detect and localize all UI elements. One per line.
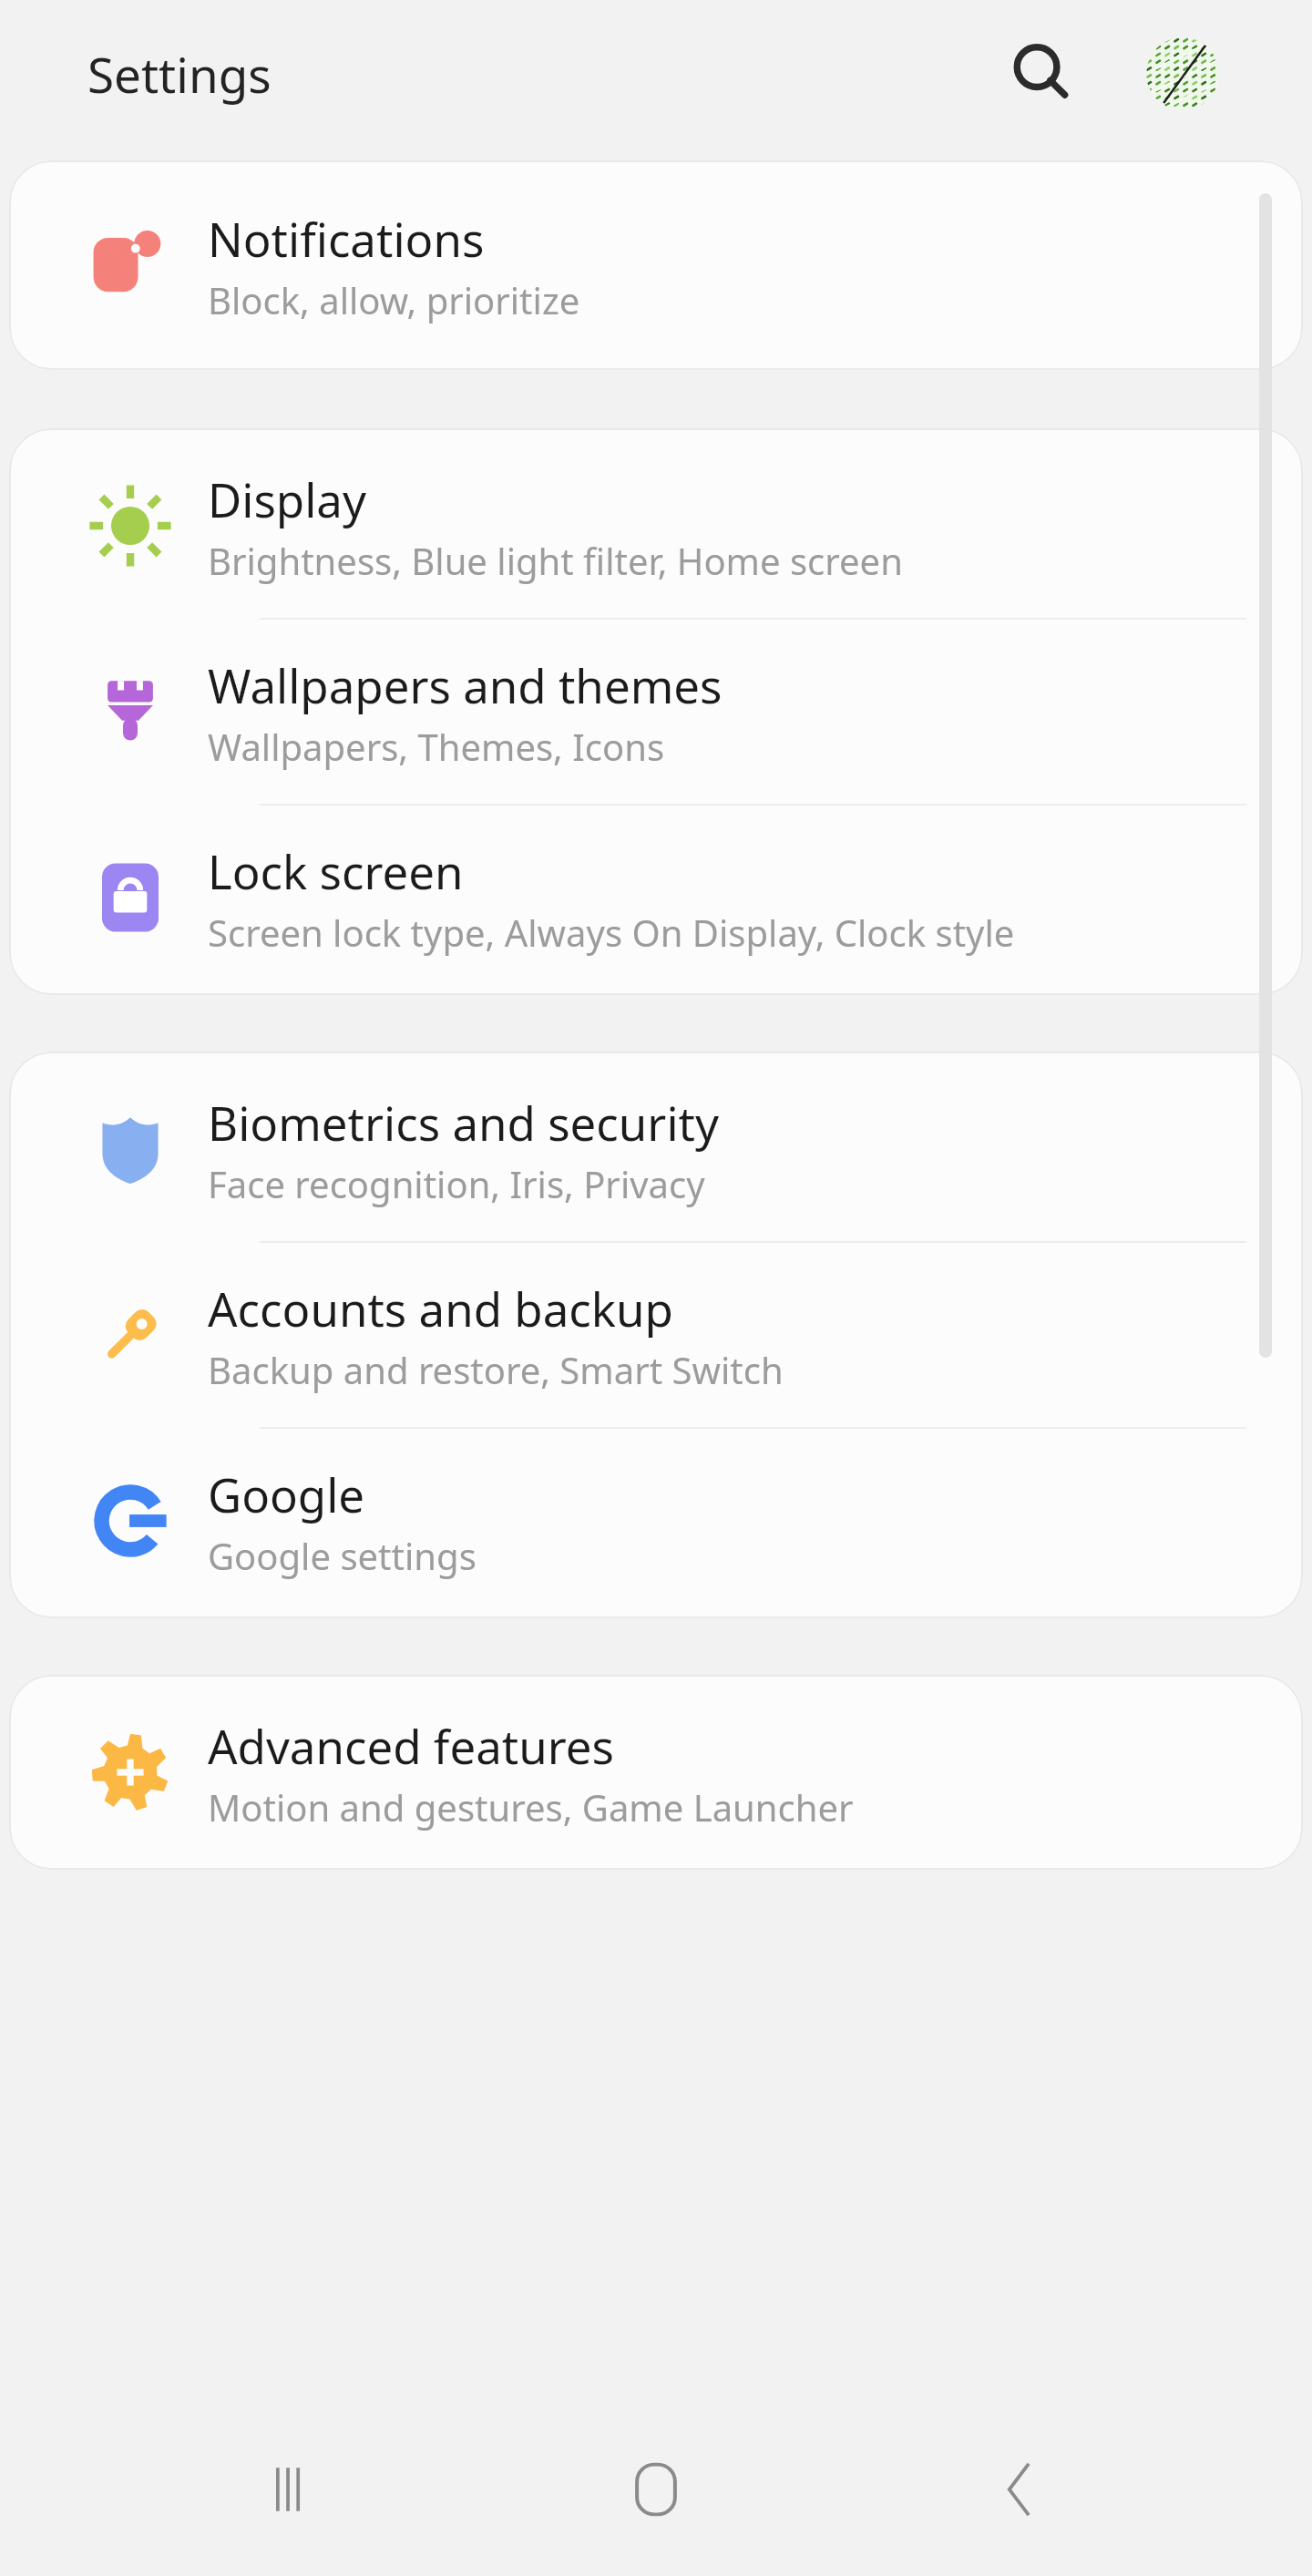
staticText: Biometrics and security <box>208 1091 720 1154</box>
staticText: Block, allow, prioritize <box>208 275 580 324</box>
staticText: Motion and gestures, Game Launcher <box>208 1782 854 1832</box>
button[interactable]: Notifications <box>9 160 1303 370</box>
staticText: Settings <box>87 41 272 107</box>
staticText: Backup and restore, Smart Switch <box>208 1345 784 1394</box>
staticText: Advanced features <box>208 1714 614 1777</box>
staticText: Wallpapers, Themes, Icons <box>208 722 665 771</box>
staticText: Notifications <box>208 207 485 270</box>
button[interactable]: Biometrics and security <box>9 1052 1303 1241</box>
button[interactable]: Display <box>9 428 1303 618</box>
staticText: Accounts and backup <box>208 1277 673 1339</box>
button[interactable]: Accounts and backup <box>9 1243 1303 1427</box>
staticText: Display <box>208 467 366 530</box>
button[interactable]: Lock screen <box>9 806 1303 995</box>
button[interactable]: Home <box>583 2417 729 2562</box>
button[interactable]: Account <box>1132 23 1234 125</box>
button[interactable]: Wallpapers and themes <box>9 620 1303 804</box>
staticText: Lock screen <box>208 839 464 902</box>
button[interactable]: Advanced features <box>9 1675 1303 1870</box>
staticText: Google settings <box>208 1531 477 1580</box>
staticText: Wallpapers and themes <box>208 653 723 716</box>
staticText: Screen lock type, Always On Display, Clo… <box>208 908 1015 957</box>
staticText: Brightness, Blue light filter, Home scre… <box>208 536 903 585</box>
button[interactable]: Recents <box>219 2417 364 2562</box>
staticText: Google <box>208 1462 365 1525</box>
button[interactable]: Back <box>948 2417 1093 2562</box>
button[interactable]: Search <box>991 23 1093 125</box>
staticText: Face recognition, Iris, Privacy <box>208 1159 705 1208</box>
button[interactable]: Google <box>9 1429 1303 1618</box>
